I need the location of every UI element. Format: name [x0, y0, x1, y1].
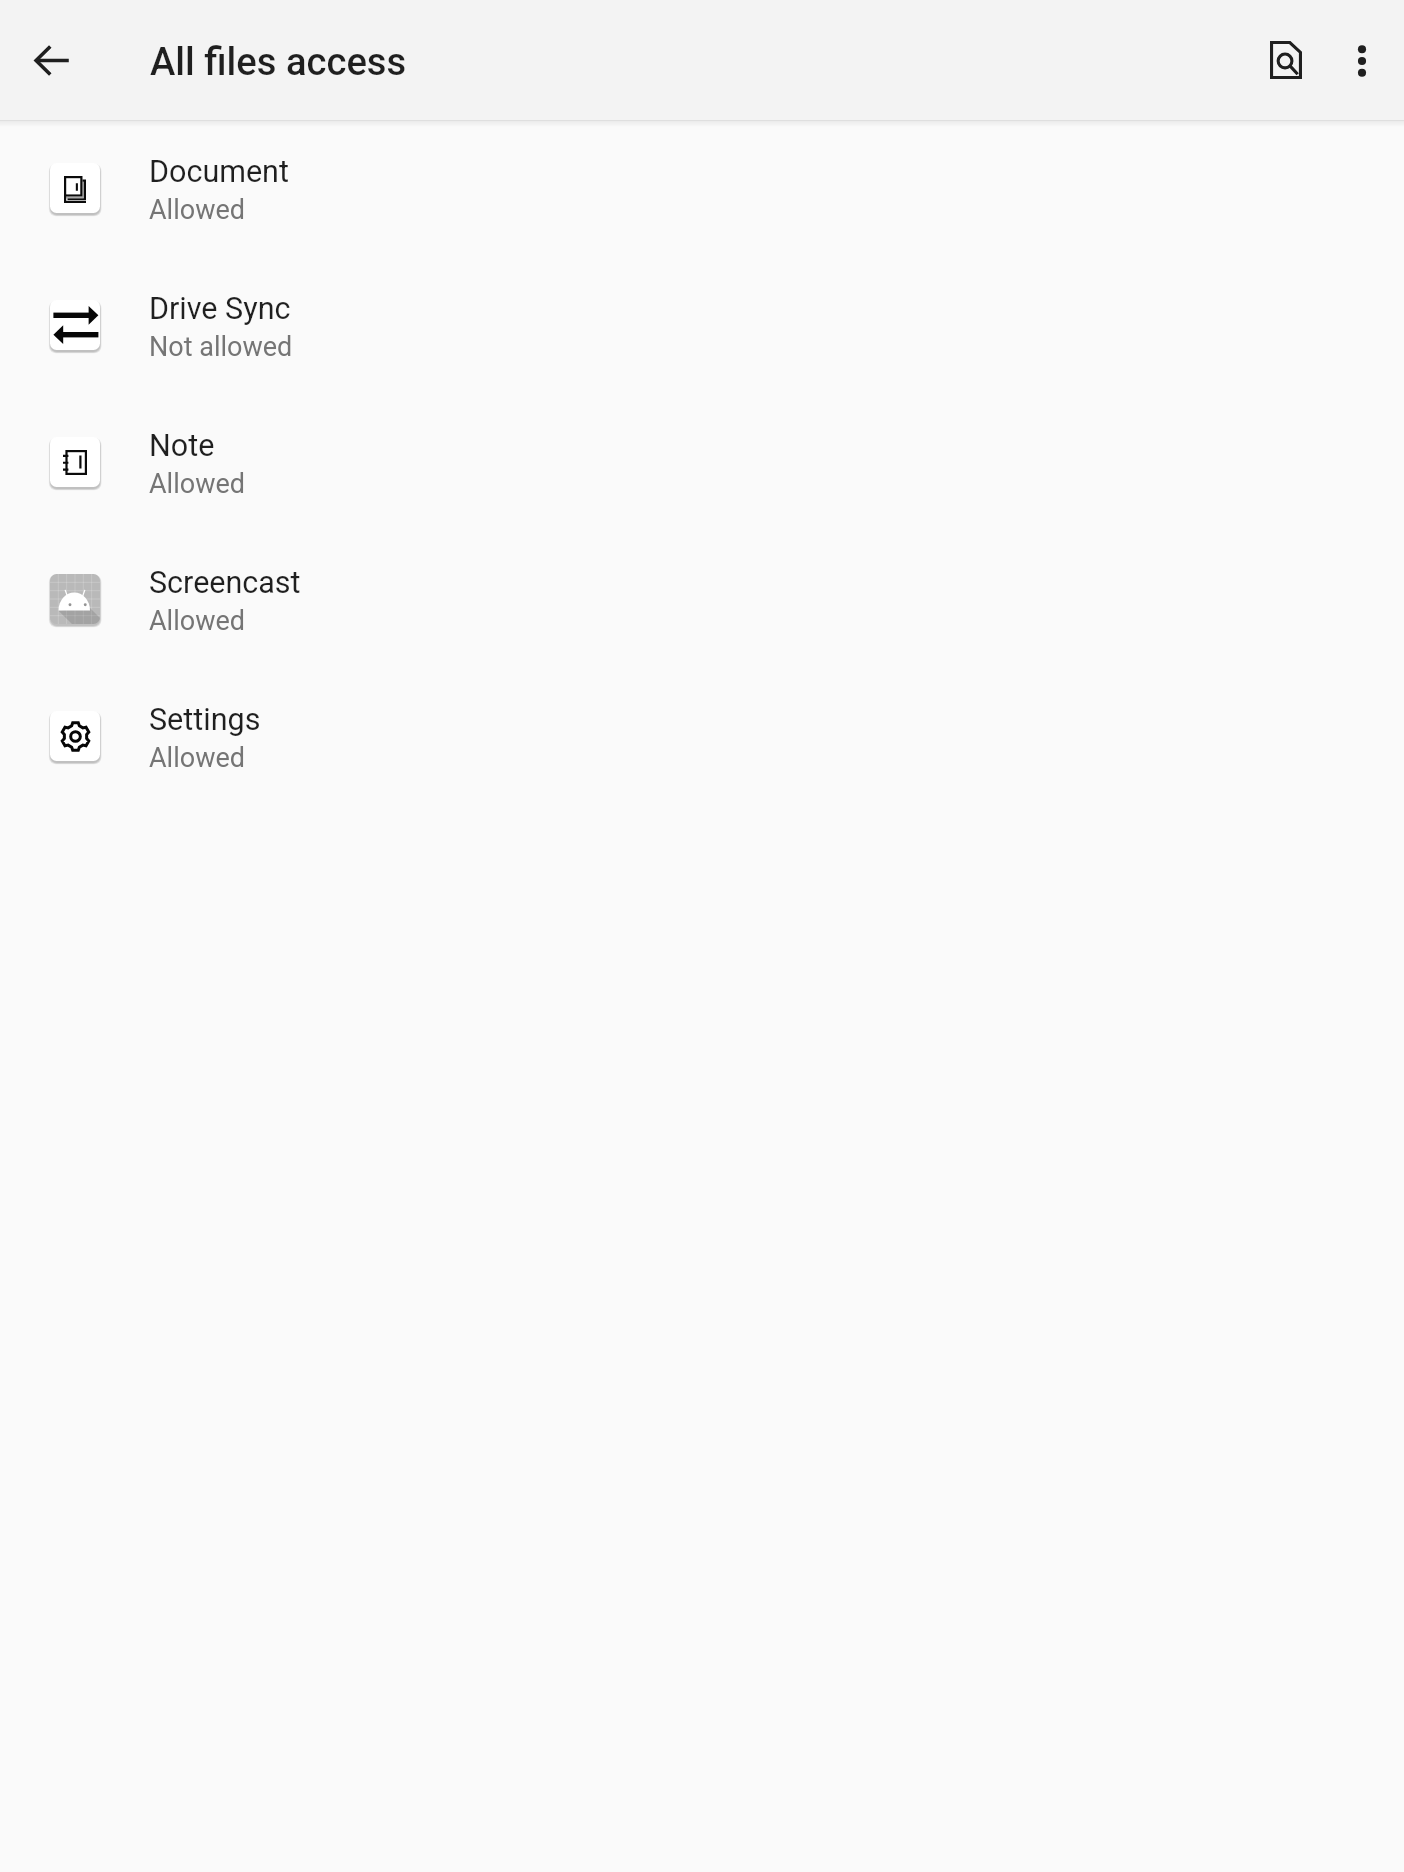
staticText: Not allowed — [149, 331, 293, 363]
button[interactable]: Settings — [0, 667, 1404, 804]
button[interactable]: Search in documents — [1248, 22, 1324, 98]
button[interactable]: Screencast — [0, 530, 1404, 667]
staticText: Note — [149, 428, 215, 464]
staticText: Allowed — [149, 468, 245, 500]
staticText: Allowed — [149, 742, 245, 774]
button[interactable]: Document — [0, 119, 1404, 256]
button[interactable]: Navigate up — [17, 25, 87, 95]
staticText: All files access — [150, 40, 407, 85]
staticText: Settings — [149, 702, 261, 738]
button[interactable]: Note — [0, 393, 1404, 530]
staticText: Allowed — [149, 605, 245, 637]
staticText: Document — [149, 154, 289, 190]
staticText: Screencast — [149, 565, 301, 601]
button[interactable]: More options — [1324, 22, 1400, 98]
button[interactable]: Drive Sync — [0, 256, 1404, 393]
staticText: Drive Sync — [149, 291, 291, 327]
staticText: Allowed — [149, 194, 245, 226]
